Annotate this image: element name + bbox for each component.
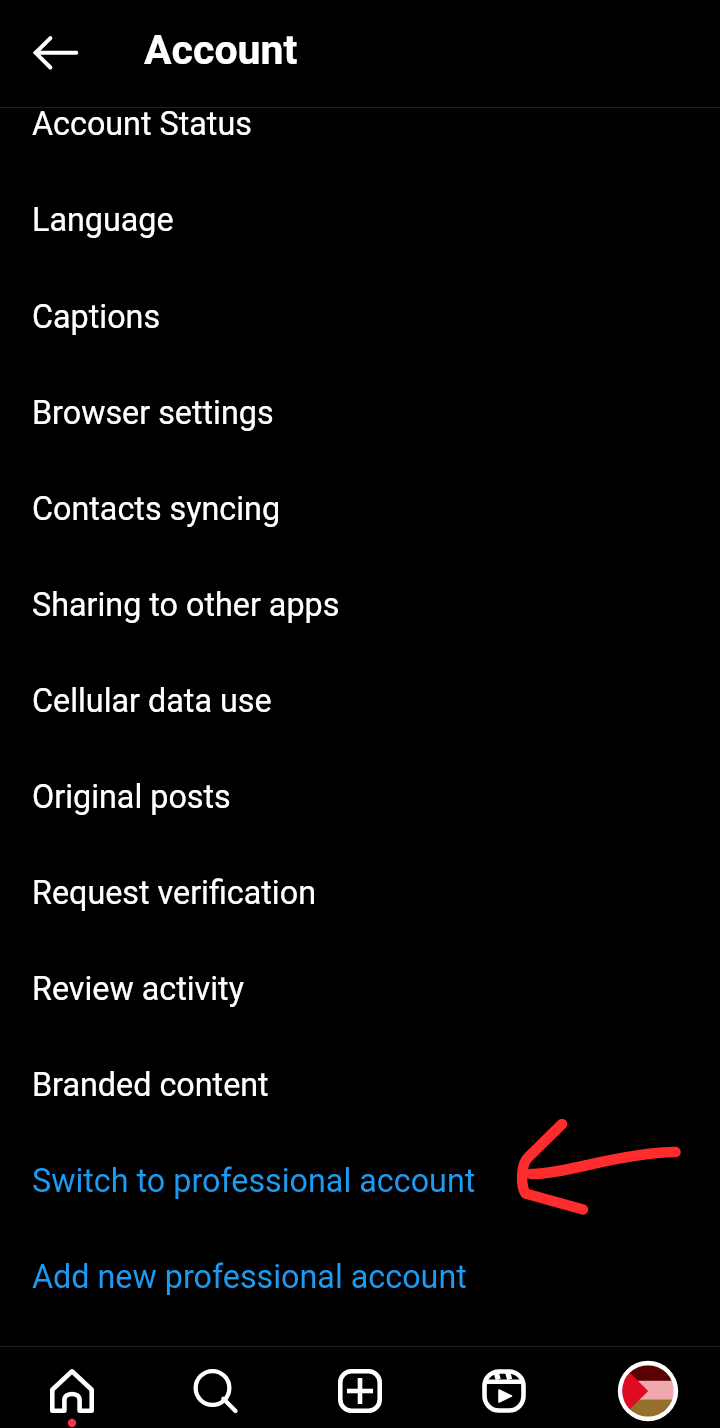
staticText: Account bbox=[144, 26, 298, 74]
button[interactable]: Browser settings bbox=[0, 365, 720, 461]
staticText: Branded content bbox=[32, 1066, 269, 1104]
staticText: Review activity bbox=[32, 970, 244, 1008]
button[interactable]: Request verification bbox=[0, 845, 720, 941]
staticText: Add new professional account bbox=[32, 1258, 467, 1296]
button[interactable]: Reels bbox=[432, 1347, 576, 1428]
staticText: Request verification bbox=[32, 874, 316, 912]
button[interactable]: Back bbox=[12, 9, 100, 97]
button[interactable]: Sharing to other apps bbox=[0, 557, 720, 653]
button[interactable]: Original posts bbox=[0, 749, 720, 845]
button[interactable]: Captions bbox=[0, 269, 720, 365]
staticText: Account Status bbox=[32, 108, 252, 143]
button[interactable]: Account Status bbox=[0, 108, 720, 172]
staticText: Sharing to other apps bbox=[32, 586, 340, 624]
button[interactable]: Home bbox=[0, 1347, 144, 1428]
button[interactable]: Language bbox=[0, 172, 720, 268]
staticText: Switch to professional account bbox=[32, 1162, 476, 1200]
button[interactable]: Search bbox=[144, 1347, 288, 1428]
staticText: Captions bbox=[32, 298, 161, 336]
staticText: Contacts syncing bbox=[32, 490, 281, 528]
staticText: Language bbox=[32, 201, 174, 239]
button[interactable]: Cellular data use bbox=[0, 653, 720, 749]
button[interactable]: Add new professional account bbox=[0, 1229, 720, 1325]
staticText: Original posts bbox=[32, 778, 231, 816]
button[interactable]: Switch to professional account bbox=[0, 1133, 720, 1229]
staticText: Cellular data use bbox=[32, 682, 272, 720]
button[interactable]: Review activity bbox=[0, 941, 720, 1037]
staticText: Browser settings bbox=[32, 394, 274, 432]
button[interactable]: Contacts syncing bbox=[0, 461, 720, 557]
button[interactable]: Branded content bbox=[0, 1037, 720, 1133]
button[interactable]: Create bbox=[288, 1347, 432, 1428]
button[interactable]: Profile bbox=[576, 1347, 720, 1428]
